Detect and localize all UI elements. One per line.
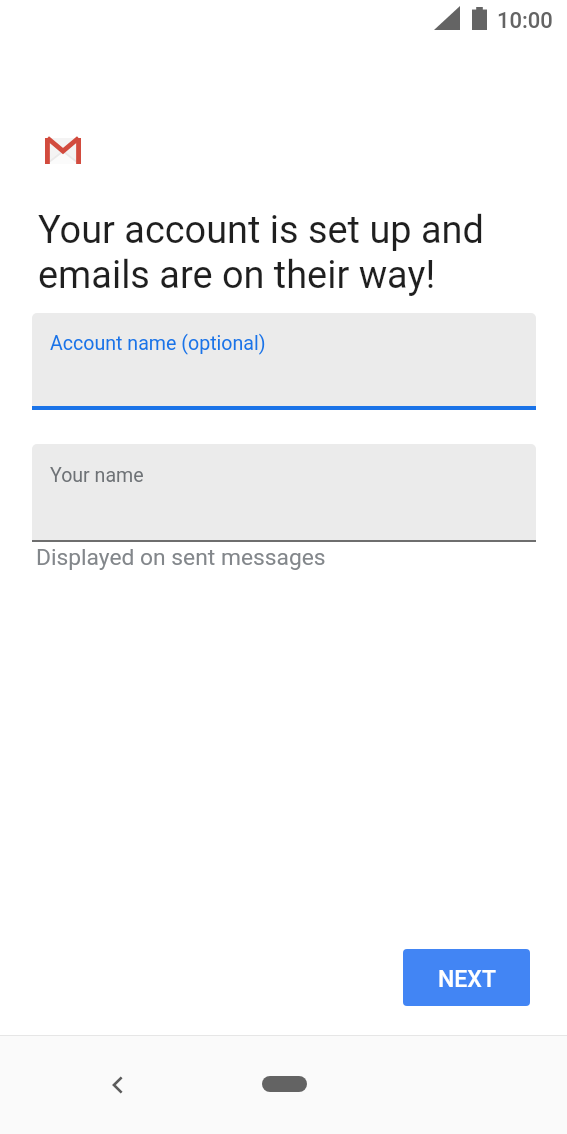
button[interactable]: NEXT [403, 949, 530, 1006]
button[interactable]: Account name (optional) [32, 313, 536, 406]
button[interactable]: Home [236, 1056, 332, 1112]
staticText: NEXT [438, 966, 496, 993]
staticText: Your name [50, 463, 144, 487]
button[interactable]: Back [88, 1056, 144, 1112]
staticText: 10:00 [497, 7, 553, 33]
staticText: Account name (optional) [50, 331, 266, 355]
button[interactable]: Your name [32, 444, 536, 540]
staticText: Displayed on sent messages [36, 544, 326, 571]
staticText: Your account is set up and emails are on… [38, 207, 548, 297]
